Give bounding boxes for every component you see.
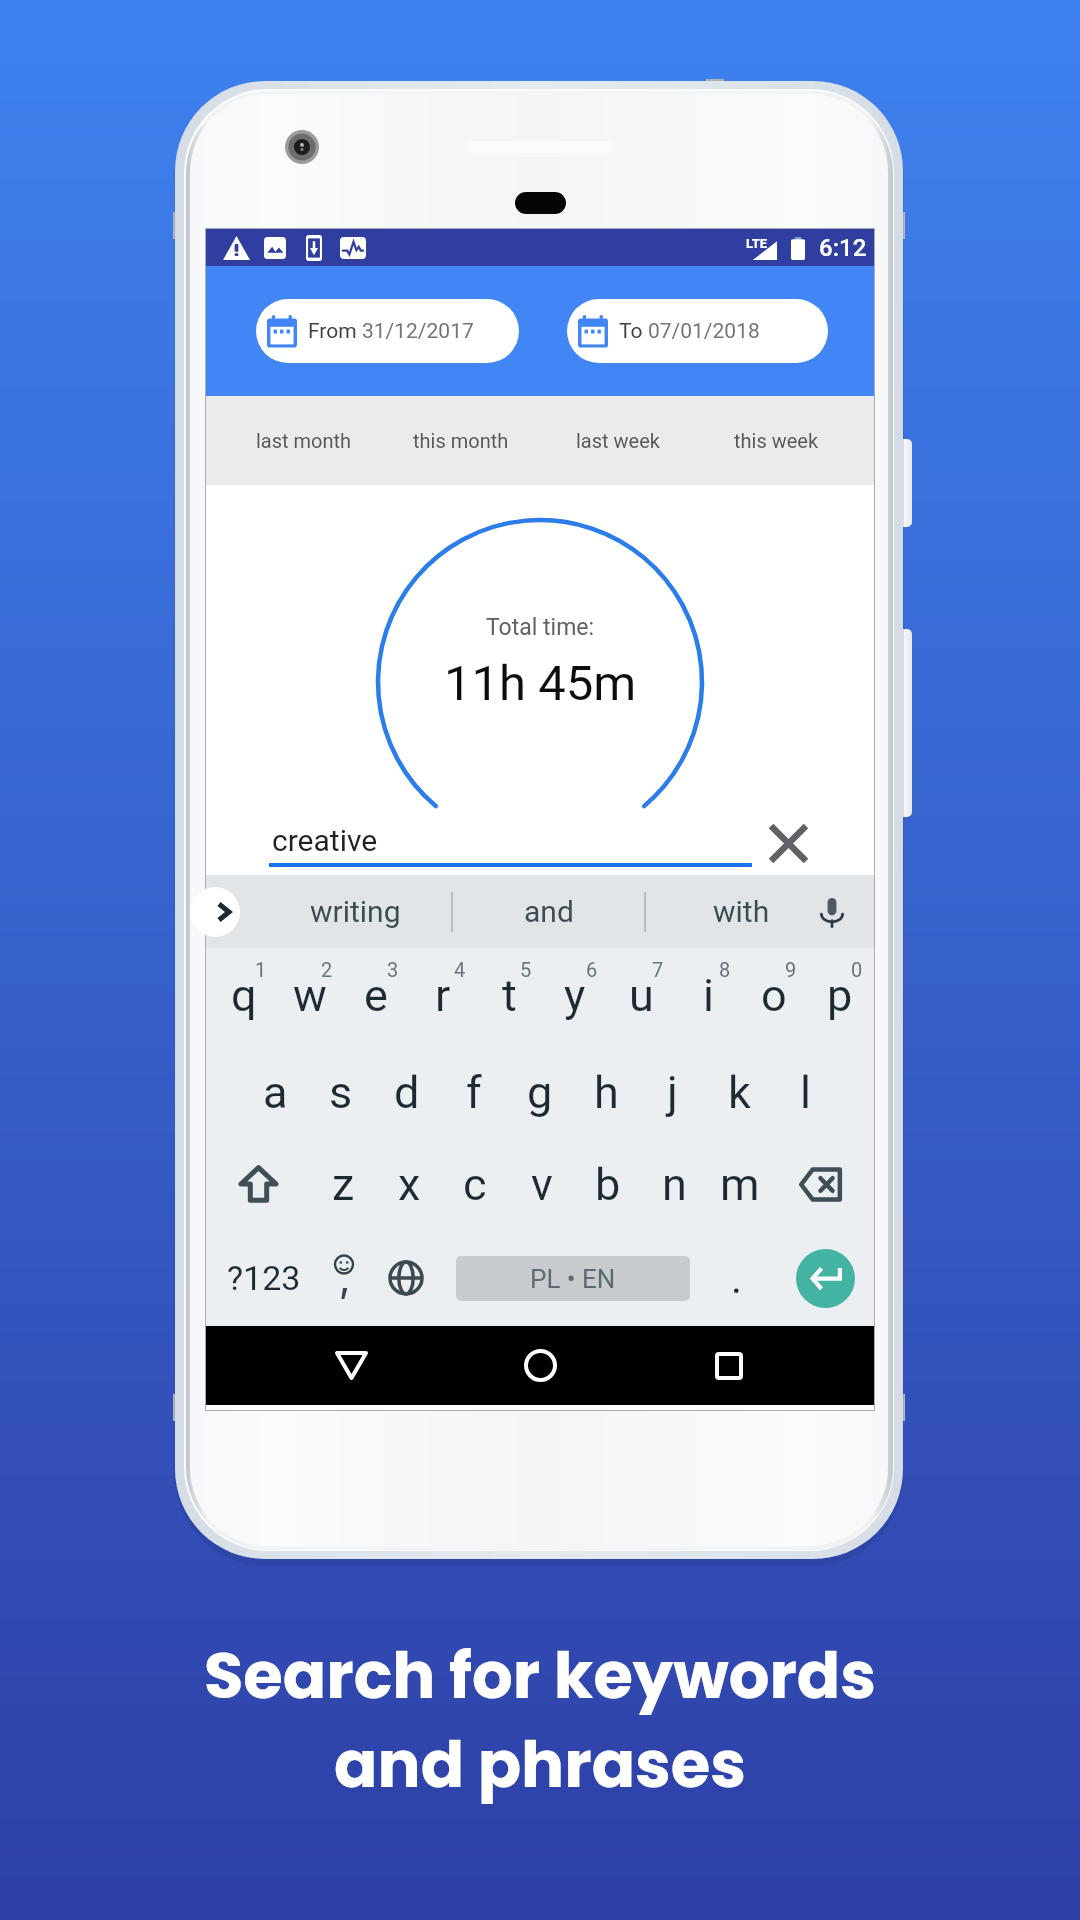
button[interactable]: m <box>707 1138 773 1230</box>
button[interactable]: t <box>476 948 542 1046</box>
button[interactable]: p <box>807 948 873 1046</box>
staticText: s <box>329 1066 353 1119</box>
staticText: 7 <box>652 958 664 981</box>
staticText: n <box>662 1158 687 1211</box>
staticText: From <box>308 319 362 344</box>
staticText: and <box>524 894 574 929</box>
staticText: 2 <box>321 958 333 981</box>
staticText: 1 <box>255 958 267 981</box>
button[interactable]: Voice input <box>810 890 854 934</box>
staticText: . <box>731 1254 743 1303</box>
button[interactable]: PL • EN <box>456 1256 690 1301</box>
staticText: j <box>667 1066 678 1119</box>
staticText: w <box>293 969 327 1022</box>
staticText: u <box>629 969 654 1022</box>
staticText: 8 <box>719 958 731 981</box>
staticText: LTE <box>746 236 768 251</box>
button[interactable]: last month <box>225 396 382 485</box>
button[interactable]: a <box>242 1046 308 1138</box>
staticText: creative <box>272 823 378 858</box>
button[interactable]: u <box>608 948 674 1046</box>
button[interactable]: d <box>374 1046 440 1138</box>
staticText: with <box>713 894 770 929</box>
button[interactable]: Enter <box>796 1249 855 1308</box>
staticText: 07/01/2018 <box>648 319 760 344</box>
staticText: ?123 <box>227 1258 301 1298</box>
staticText: v <box>531 1158 553 1211</box>
staticText: x <box>398 1158 421 1211</box>
button[interactable]: and <box>453 875 644 948</box>
staticText: 6 <box>586 958 598 981</box>
button[interactable]: ?123 <box>214 1230 314 1326</box>
button[interactable]: this month <box>382 396 539 485</box>
staticText: k <box>728 1066 751 1119</box>
button[interactable]: f <box>441 1046 507 1138</box>
button[interactable]: writing <box>259 875 451 948</box>
button[interactable]: Emoji <box>314 1230 374 1326</box>
button[interactable]: n <box>641 1138 707 1230</box>
button[interactable]: g <box>507 1046 573 1138</box>
button[interactable]: k <box>706 1046 772 1138</box>
button[interactable]: q <box>211 948 277 1046</box>
staticText: To <box>619 319 648 344</box>
staticText: 4 <box>454 958 466 981</box>
staticText: e <box>364 969 388 1022</box>
staticText: i <box>703 969 714 1022</box>
staticText: z <box>332 1158 355 1211</box>
button[interactable]: o <box>741 948 807 1046</box>
button[interactable]: v <box>509 1138 575 1230</box>
button[interactable]: x <box>376 1138 442 1230</box>
button[interactable]: e <box>343 948 409 1046</box>
staticText: r <box>435 969 451 1022</box>
staticText: y <box>564 969 586 1022</box>
staticText: m <box>720 1158 760 1211</box>
staticText: f <box>466 1066 482 1119</box>
staticText: p <box>827 969 853 1022</box>
button[interactable]: c <box>442 1138 508 1230</box>
staticText: writing <box>310 894 401 929</box>
staticText: Search for keywords and phrases <box>204 1631 876 1809</box>
button[interactable]: Recents <box>684 1326 774 1405</box>
button[interactable]: Back <box>306 1326 396 1405</box>
staticText: q <box>231 969 257 1022</box>
button[interactable]: this week <box>697 396 855 485</box>
staticText: this month <box>413 429 509 452</box>
button[interactable]: h <box>573 1046 639 1138</box>
staticText: PL • EN <box>530 1264 616 1294</box>
staticText: 5 <box>520 958 532 981</box>
button[interactable]: r <box>410 948 476 1046</box>
staticText: 9 <box>785 958 797 981</box>
staticText: this week <box>734 429 819 452</box>
button[interactable]: j <box>639 1046 705 1138</box>
staticText: a <box>263 1066 288 1119</box>
button[interactable]: Clear <box>758 813 818 873</box>
button[interactable]: z <box>310 1138 376 1230</box>
button[interactable]: with <box>646 875 837 948</box>
button[interactable]: l <box>772 1046 838 1138</box>
button[interactable]: . <box>698 1230 776 1326</box>
button[interactable]: To <box>567 299 828 363</box>
button[interactable]: y <box>542 948 608 1046</box>
button[interactable]: Change language <box>374 1230 438 1326</box>
staticText: 31/12/2017 <box>362 319 474 344</box>
staticText: 6:12 <box>819 234 867 262</box>
button[interactable]: Expand suggestions <box>190 887 240 937</box>
staticText: 3 <box>387 958 399 981</box>
button[interactable]: Home <box>495 1326 585 1405</box>
button[interactable]: w <box>277 948 343 1046</box>
staticText: last week <box>576 429 660 452</box>
staticText: b <box>595 1158 621 1211</box>
button[interactable]: b <box>575 1138 641 1230</box>
button[interactable]: s <box>308 1046 374 1138</box>
button[interactable]: i <box>675 948 741 1046</box>
staticText: Total time: <box>486 614 595 641</box>
staticText: l <box>800 1066 811 1119</box>
button[interactable]: Backspace <box>780 1138 860 1230</box>
staticText: t <box>502 969 517 1022</box>
button[interactable]: Shift <box>218 1138 298 1230</box>
button[interactable]: From <box>256 299 519 363</box>
button[interactable]: last week <box>539 396 697 485</box>
staticText: d <box>394 1066 420 1119</box>
staticText: last month <box>256 429 352 452</box>
staticText: g <box>527 1066 553 1119</box>
